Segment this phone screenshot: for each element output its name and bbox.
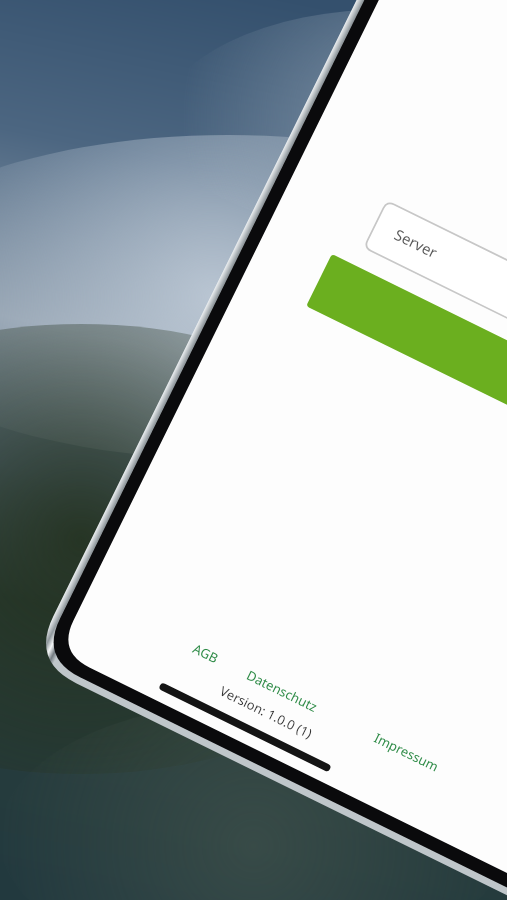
button[interactable]: Login screen photo [0, 0, 507, 900]
